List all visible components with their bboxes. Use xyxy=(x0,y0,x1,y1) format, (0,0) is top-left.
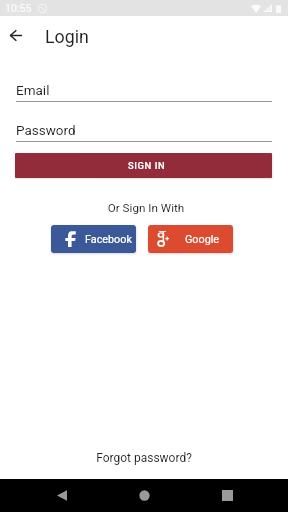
staticText: Facebook xyxy=(85,233,132,246)
button[interactable]: Facebook xyxy=(51,225,136,253)
staticText: Password xyxy=(16,122,76,138)
button[interactable]: Recent apps xyxy=(207,479,247,512)
staticText: Or Sign In With xyxy=(2,201,288,215)
button[interactable]: Back xyxy=(0,16,31,54)
staticText: Google xyxy=(185,233,220,246)
button[interactable]: Home xyxy=(124,479,164,512)
staticText: SIGN IN xyxy=(128,160,166,171)
button[interactable]: Google xyxy=(148,225,233,253)
button[interactable]: SIGN IN xyxy=(15,153,272,178)
button[interactable]: Forgot password? xyxy=(0,451,288,465)
staticText: 10:55 xyxy=(5,2,32,14)
staticText: Login xyxy=(45,26,89,47)
button[interactable]: Back xyxy=(42,479,82,512)
staticText: Email xyxy=(16,82,50,98)
